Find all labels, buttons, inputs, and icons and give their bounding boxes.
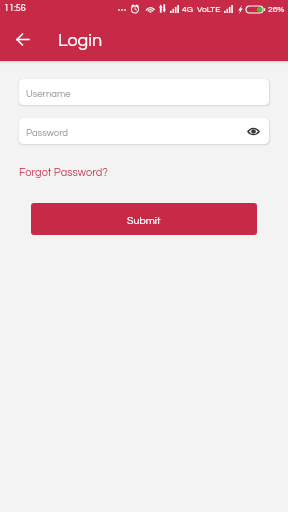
button[interactable]: Show password	[245, 123, 261, 139]
staticText: 26%	[268, 5, 285, 14]
button[interactable]: Forgot Password?	[19, 167, 108, 178]
staticText: Forgot Password?	[19, 167, 108, 178]
staticText: Login	[58, 31, 103, 50]
staticText: 11:56	[4, 4, 26, 13]
staticText: Username	[26, 89, 71, 99]
button[interactable]: Password	[19, 118, 269, 144]
staticText: VoLTE	[197, 5, 221, 14]
button[interactable]: Back	[9, 25, 37, 53]
button[interactable]: Username	[19, 79, 269, 105]
button[interactable]: Submit	[31, 203, 257, 235]
staticText: Password	[26, 128, 68, 138]
staticText: Submit	[127, 215, 161, 226]
staticText: 4G	[182, 5, 193, 14]
